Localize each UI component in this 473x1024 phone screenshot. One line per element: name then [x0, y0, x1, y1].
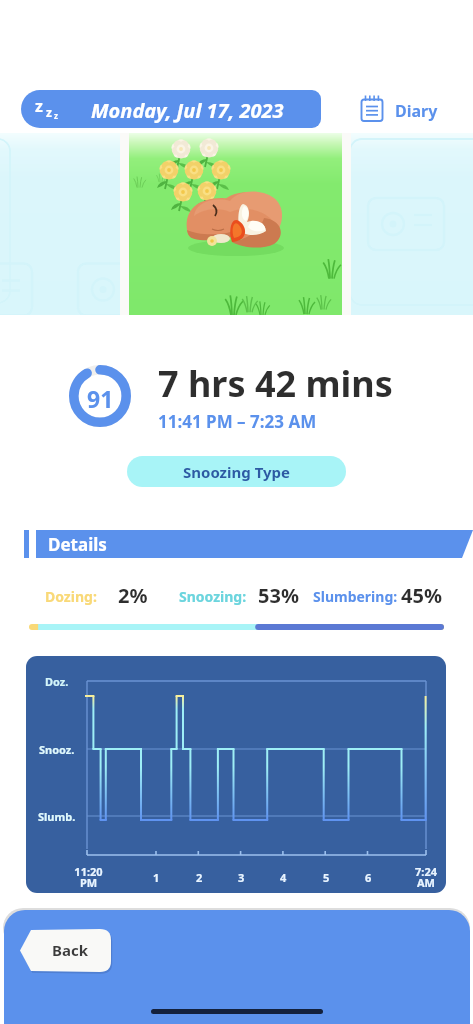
staticText: 2% — [118, 582, 148, 608]
staticText: 11:41 PM – 7:23 AM — [158, 410, 317, 433]
staticText: Slumbering: — [313, 587, 398, 606]
staticText: 53% — [258, 582, 299, 608]
staticText: 45% — [401, 582, 442, 608]
staticText: Dozing: — [45, 587, 97, 606]
button[interactable] — [21, 90, 321, 128]
staticText: Snoozing Type — [183, 462, 290, 482]
staticText: Monday, Jul 17, 2023 — [91, 97, 284, 124]
button[interactable]: Back — [20, 929, 111, 972]
button[interactable]: Snoozing Type — [127, 456, 346, 487]
staticText: Doz. — [45, 674, 69, 689]
staticText: Slumb. — [38, 809, 76, 824]
staticText: 5 — [323, 870, 330, 885]
staticText: 11:20 PM — [74, 864, 103, 891]
staticText: 91 — [87, 383, 114, 414]
staticText: z — [46, 104, 52, 120]
staticText: 7 hrs 42 mins — [158, 359, 393, 408]
staticText: 3 — [238, 870, 245, 885]
staticText: 7:24 AM — [415, 864, 437, 891]
staticText: z — [54, 110, 58, 121]
staticText: 4 — [280, 870, 287, 885]
staticText: 2 — [196, 870, 203, 885]
button[interactable]: Diary — [355, 90, 437, 128]
staticText: z — [35, 95, 43, 117]
staticText: 6 — [365, 870, 372, 885]
staticText: Details — [48, 533, 107, 556]
staticText: 1 — [153, 870, 160, 885]
staticText: Snooz. — [39, 742, 75, 757]
staticText: Back — [52, 940, 89, 960]
staticText: Snoozing: — [179, 587, 247, 606]
staticText: Diary — [395, 100, 438, 122]
